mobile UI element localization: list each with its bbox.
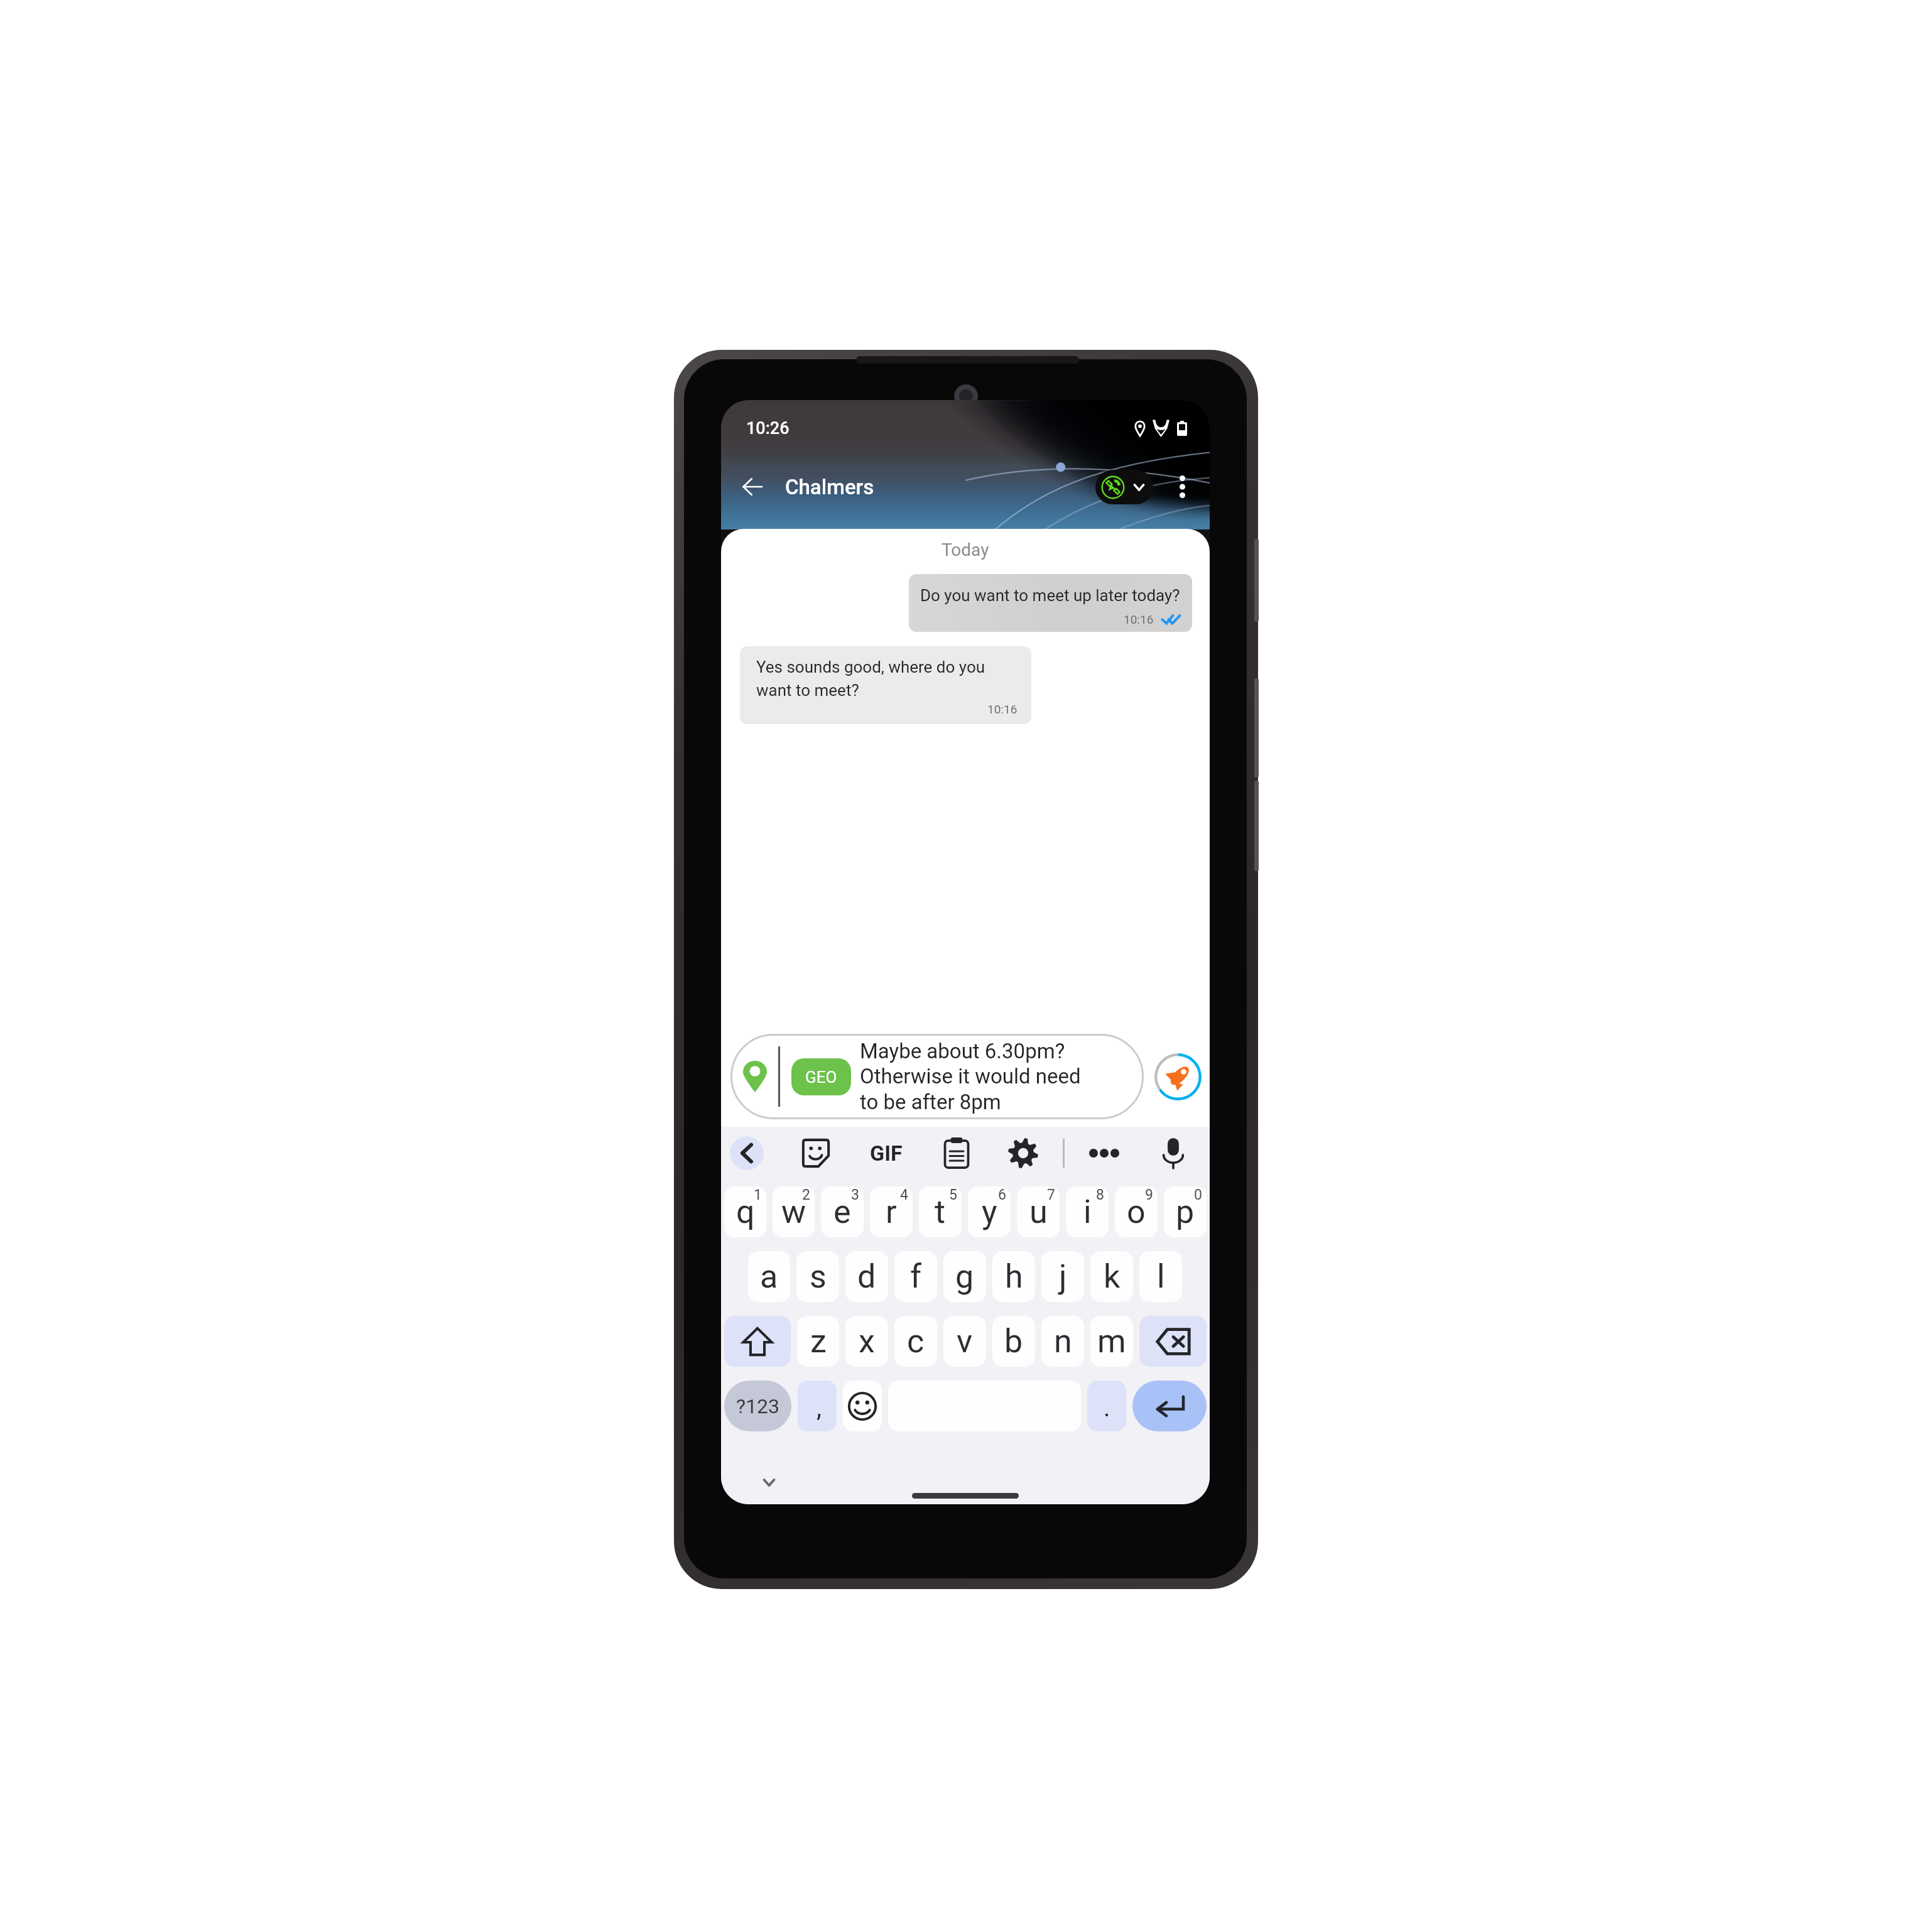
staticText: w [781,1193,806,1231]
button[interactable]: Backspace [1139,1316,1207,1367]
button[interactable]: u [1017,1186,1060,1237]
button[interactable]: Do you want to meet up later today? [909,574,1192,632]
button[interactable]: p [1164,1186,1207,1237]
button[interactable]: Enter [1132,1381,1207,1431]
staticText: 0 [1194,1186,1202,1203]
staticText: u [1029,1193,1048,1231]
staticText: GEO [805,1068,837,1087]
staticText: q [736,1193,755,1231]
staticText: 3 [851,1186,859,1203]
button[interactable]: k [1090,1251,1133,1302]
button[interactable]: Stickers [796,1133,836,1173]
button[interactable]: More options [1166,470,1198,503]
staticText: r [886,1193,897,1231]
button[interactable]: c [894,1316,937,1367]
staticText: n [1054,1322,1072,1360]
staticText: m [1097,1322,1126,1360]
button[interactable]: a [748,1251,790,1302]
button[interactable]: r [870,1186,913,1237]
staticText: GIF [870,1141,903,1166]
button[interactable]: Clipboard [936,1133,977,1173]
button[interactable]: x [845,1316,888,1367]
staticText: i [1083,1193,1092,1231]
staticText: a [760,1257,778,1296]
button[interactable]: Expand toolbar [730,1136,764,1170]
button[interactable]: v [943,1316,986,1367]
staticText: , [817,1393,822,1423]
button[interactable]: f [894,1251,937,1302]
button[interactable]: Voice input [1153,1133,1193,1173]
staticText: 7 [1047,1186,1055,1203]
staticText: 9 [1145,1186,1153,1203]
button[interactable]: Hide keyboard [752,1466,785,1499]
button[interactable]: Emoji [843,1381,882,1431]
button[interactable]: m [1090,1316,1133,1367]
staticText: . [1104,1393,1110,1423]
staticText: Chalmers [785,475,874,499]
staticText: l [1157,1257,1165,1296]
button[interactable]: More [1084,1133,1124,1173]
staticText: t [935,1193,946,1231]
button[interactable]: ?123 [724,1381,791,1431]
staticText: Maybe about 6.30pm? Otherwise it would n… [860,1039,1081,1115]
staticText: z [810,1322,827,1360]
button[interactable]: w [773,1186,815,1237]
button[interactable]: e [821,1186,864,1237]
staticText: Yes sounds good, where do you want to me… [756,658,985,700]
staticText: ?123 [736,1394,780,1418]
staticText: v [957,1322,973,1360]
button[interactable]: Back [729,463,776,511]
staticText: 5 [949,1186,957,1203]
staticText: Today [942,540,989,560]
staticText: 10:26 [746,418,790,438]
staticText: 8 [1096,1186,1104,1203]
staticText: g [955,1257,974,1296]
staticText: o [1127,1193,1146,1231]
staticText: Do you want to meet up later today? [920,586,1180,605]
staticText: p [1176,1193,1195,1231]
button[interactable]: d [845,1251,888,1302]
staticText: d [857,1257,876,1296]
staticText: j [1059,1257,1067,1296]
staticText: c [907,1322,925,1360]
staticText: x [859,1322,875,1360]
button[interactable]: t [919,1186,962,1237]
staticText: 4 [900,1186,908,1203]
button[interactable]: Settings [1003,1133,1043,1173]
button[interactable]: z [797,1316,839,1367]
staticText: s [810,1257,827,1296]
button[interactable]: Send [1154,1053,1202,1100]
staticText: 10:16 [1124,612,1154,626]
button[interactable]: l [1139,1251,1182,1302]
button[interactable]: y [968,1186,1011,1237]
staticText: 10:16 [987,702,1018,716]
staticText: e [833,1193,851,1231]
staticText: b [1004,1322,1023,1360]
button[interactable]: b [992,1316,1035,1367]
staticText: f [910,1257,922,1296]
button[interactable]: Shift [724,1316,791,1367]
button[interactable]: q [724,1186,766,1237]
button[interactable]: j [1041,1251,1084,1302]
button[interactable]: s [796,1251,839,1302]
staticText: 2 [802,1186,810,1203]
staticText: 1 [754,1186,762,1203]
button[interactable]: GIF [862,1134,910,1172]
button[interactable]: Yes sounds good, where do you want to me… [740,646,1031,724]
button[interactable]: . [1087,1381,1126,1431]
staticText: k [1104,1257,1121,1296]
button[interactable]: o [1115,1186,1158,1237]
button[interactable]: Satellite connection [1095,470,1153,504]
staticText: y [982,1193,997,1231]
button[interactable]: h [992,1251,1035,1302]
staticText: 6 [998,1186,1006,1203]
button[interactable]: n [1041,1316,1084,1367]
button[interactable]: g [943,1251,986,1302]
button[interactable]: i [1066,1186,1109,1237]
staticText: h [1005,1257,1023,1296]
button[interactable]: , [798,1381,837,1431]
button[interactable]: GEO [730,1034,1144,1119]
